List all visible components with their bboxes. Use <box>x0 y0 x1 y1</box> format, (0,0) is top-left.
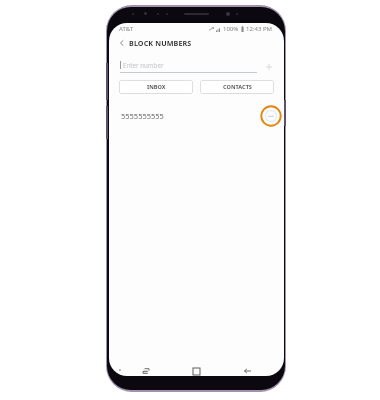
button[interactable]: Add number <box>263 61 274 72</box>
staticText: 5555555555 <box>121 111 164 121</box>
button[interactable]: Back <box>115 36 129 50</box>
button[interactable]: Home <box>190 364 203 376</box>
staticText: Enter number <box>123 61 164 69</box>
staticText: INBOX <box>147 83 166 91</box>
staticText: 100% <box>223 25 239 33</box>
button[interactable]: Back <box>241 364 254 376</box>
button[interactable]: Remove number <box>260 105 282 127</box>
staticText: CONTACTS <box>223 83 252 91</box>
button[interactable]: 5555555555 <box>121 104 282 128</box>
button[interactable]: Recents <box>140 364 152 376</box>
staticText: BLOCK NUMBERS <box>129 38 192 48</box>
staticText: 12:43 PM <box>246 25 272 33</box>
button[interactable]: CONTACTS <box>200 80 274 94</box>
staticText: AT&T <box>119 25 133 33</box>
button[interactable]: INBOX <box>119 80 193 94</box>
